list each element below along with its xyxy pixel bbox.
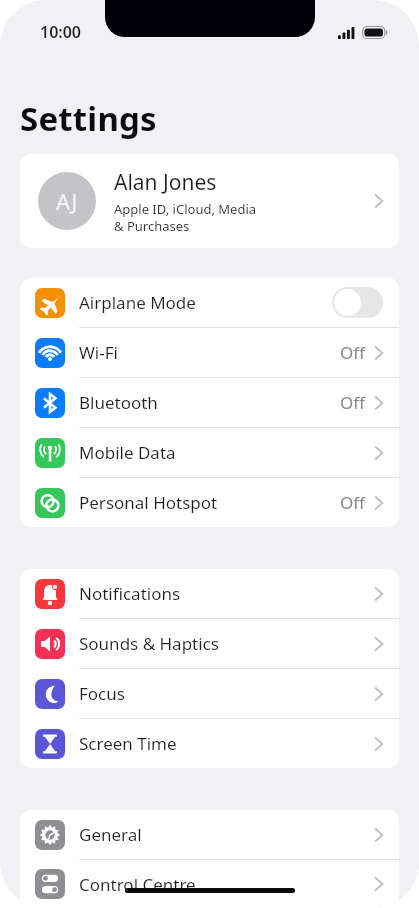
staticText: Bluetooth xyxy=(79,391,340,414)
staticText: 10:00 xyxy=(40,21,82,43)
staticText: Notifications xyxy=(79,582,374,605)
button[interactable]: Airplane Mode toggle xyxy=(332,287,383,318)
button[interactable]: Focus xyxy=(20,669,399,718)
button[interactable]: Bluetooth xyxy=(20,378,399,427)
staticText: Settings xyxy=(20,96,157,141)
staticText: Control Centre xyxy=(79,873,374,896)
button[interactable]: Personal Hotspot xyxy=(20,478,399,527)
staticText: Wi-Fi xyxy=(79,341,340,364)
staticText: AJ xyxy=(56,186,78,216)
staticText: Personal Hotspot xyxy=(79,491,340,514)
staticText: Focus xyxy=(79,682,374,705)
button[interactable]: Airplane Mode xyxy=(20,278,399,327)
staticText: Off xyxy=(340,341,365,364)
staticText: Sounds & Haptics xyxy=(79,632,374,655)
staticText: Screen Time xyxy=(79,732,374,755)
button[interactable]: AJ xyxy=(20,154,399,248)
staticText: General xyxy=(79,823,374,846)
button[interactable]: General xyxy=(20,810,399,859)
staticText: Apple ID, iCloud, Media & Purchases xyxy=(114,200,257,235)
button[interactable]: Sounds & Haptics xyxy=(20,619,399,668)
staticText: Alan Jones xyxy=(114,168,217,197)
button[interactable]: Control Centre xyxy=(20,860,399,908)
staticText: Airplane Mode xyxy=(79,291,332,314)
button[interactable]: Mobile Data xyxy=(20,428,399,477)
staticText: Mobile Data xyxy=(79,441,374,464)
staticText: Off xyxy=(340,391,365,414)
button[interactable]: Notifications xyxy=(20,569,399,618)
button[interactable]: Wi-Fi xyxy=(20,328,399,377)
staticText: Off xyxy=(340,491,365,514)
button[interactable]: Screen Time xyxy=(20,719,399,768)
